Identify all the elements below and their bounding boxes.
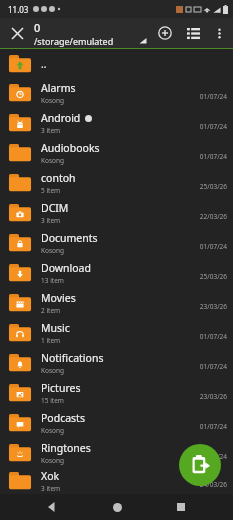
staticText: 23/03/26 (199, 392, 227, 401)
button[interactable]: Audiobooks (0, 138, 233, 168)
button[interactable]: More options (207, 21, 231, 45)
button[interactable]: Android (0, 108, 233, 138)
staticText: 25/03/26 (199, 272, 227, 281)
staticText: 01/07/24 (199, 362, 227, 371)
staticText: 01/07/24 (199, 152, 227, 161)
staticText: 3 item (41, 216, 61, 225)
button[interactable]: Ringtones (0, 438, 233, 468)
staticText: 1 item (41, 336, 61, 345)
button[interactable]: Pictures (0, 378, 233, 408)
staticText: Notifications (41, 351, 104, 365)
button[interactable]: Podcasts (0, 408, 233, 438)
staticText: 01/07/24 (199, 452, 227, 461)
staticText: 01/07/24 (199, 242, 227, 251)
button[interactable]: Documents (0, 228, 233, 258)
staticText: Kosong (41, 156, 65, 165)
staticText: Ringtones (41, 441, 91, 455)
staticText: 23/03/26 (199, 302, 227, 311)
staticText: 15 item (41, 396, 64, 405)
button[interactable]: Xok (0, 468, 233, 494)
staticText: DCIM (41, 201, 69, 215)
staticText: Podcasts (41, 411, 85, 425)
staticText: 01/07/24 (199, 92, 227, 101)
staticText: 22/03/26 (199, 212, 227, 221)
staticText: Movies (41, 291, 76, 305)
staticText: Alarms (41, 81, 76, 95)
button[interactable]: Home (104, 494, 130, 520)
staticText: 01/07/24 (199, 122, 227, 131)
staticText: Kosong (41, 366, 65, 375)
button[interactable]: Recents (168, 494, 194, 520)
button[interactable]: Paste (179, 444, 221, 486)
button[interactable]: Music (0, 318, 233, 348)
staticText: Music (41, 321, 70, 335)
staticText: 11.03 (8, 4, 29, 15)
staticText: Kosong (41, 426, 65, 435)
button[interactable]: Close (4, 20, 30, 46)
staticText: Kosong (41, 246, 65, 255)
button[interactable]: Add (151, 19, 179, 47)
button[interactable]: Notifications (0, 348, 233, 378)
staticText: contoh (41, 171, 76, 185)
staticText: 01/07/24 (199, 422, 227, 431)
button[interactable]: Download (0, 258, 233, 288)
staticText: Download (41, 261, 91, 275)
staticText: 3 item (41, 126, 61, 135)
staticText: Kosong (41, 96, 65, 105)
staticText: .. (41, 57, 47, 71)
staticText: 01/07/24 (199, 332, 227, 341)
staticText: Xok (41, 469, 60, 483)
staticText: Kosong (41, 456, 65, 465)
staticText: 5 item (41, 186, 61, 195)
staticText: Documents (41, 231, 98, 245)
button[interactable]: Alarms (0, 78, 233, 108)
staticText: 25/03/26 (199, 182, 227, 191)
staticText: Android (41, 111, 81, 125)
button[interactable]: DCIM (0, 198, 233, 228)
staticText: 0 (34, 20, 41, 35)
button[interactable]: Movies (0, 288, 233, 318)
staticText: 3 item (41, 484, 61, 493)
button[interactable]: View mode (179, 19, 207, 47)
staticText: Pictures (41, 381, 81, 395)
button[interactable]: contoh (0, 168, 233, 198)
staticText: 13 item (41, 276, 64, 285)
staticText: /storage/emulated (34, 35, 114, 47)
button[interactable]: .. (0, 49, 233, 78)
button[interactable]: Back (39, 494, 65, 520)
staticText: 24/03/26 (199, 480, 227, 489)
button[interactable]: 0 (34, 20, 114, 47)
staticText: 2 item (41, 306, 61, 315)
staticText: Audiobooks (41, 141, 100, 155)
